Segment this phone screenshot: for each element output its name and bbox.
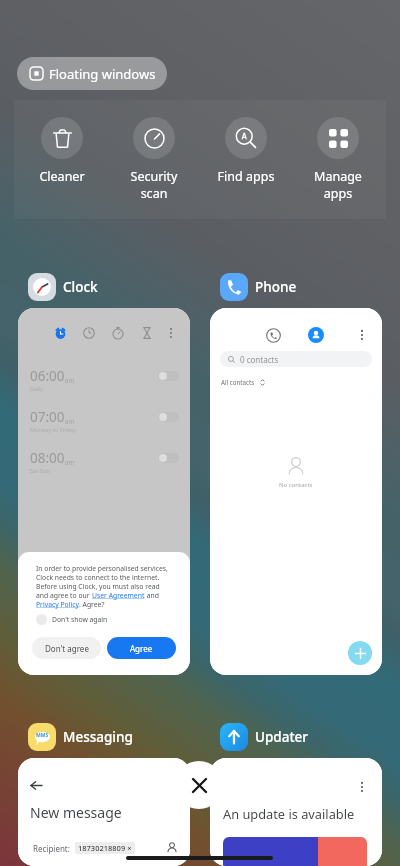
- button[interactable]: Cleaner: [18, 100, 106, 185]
- button[interactable]: Security scan: [110, 100, 198, 201]
- staticText: am: [65, 417, 75, 425]
- staticText: In order to provide personalised service…: [36, 564, 168, 573]
- staticText: am: [65, 376, 75, 384]
- staticText: 18730218809 ×: [78, 843, 132, 853]
- staticText: An update is available: [223, 805, 355, 822]
- button[interactable]: Clock: [18, 273, 98, 301]
- button[interactable]: Tab: [305, 324, 327, 346]
- button[interactable]: Manage apps: [294, 100, 382, 201]
- staticText: Privacy Policy: [36, 600, 79, 609]
- staticText: Don't show again: [52, 615, 108, 624]
- button[interactable]: More options: [210, 758, 382, 866]
- button[interactable]: Updater: [210, 723, 309, 751]
- button[interactable]: Don't show again: [36, 614, 108, 625]
- staticText: No contacts: [279, 481, 313, 489]
- staticText: Daily: [30, 385, 43, 393]
- staticText: Updater: [255, 728, 309, 746]
- staticText: New message: [30, 803, 122, 822]
- button[interactable]: Find apps: [202, 100, 290, 185]
- button[interactable]: Tab: [107, 322, 129, 344]
- button[interactable]: Toggle alarm: [158, 453, 179, 463]
- staticText: Messaging: [63, 728, 133, 746]
- staticText: Phone: [255, 278, 297, 296]
- button[interactable]: MMS: [18, 723, 133, 751]
- staticText: User Agreement: [92, 591, 145, 600]
- button[interactable]: More options: [352, 777, 372, 797]
- button[interactable]: All contacts: [221, 378, 266, 386]
- button[interactable]: Phone: [210, 273, 297, 301]
- staticText: Manage apps: [294, 168, 382, 201]
- button[interactable]: Tab: [160, 322, 182, 344]
- staticText: MMS: [36, 732, 49, 739]
- button[interactable]: Add contact: [348, 641, 372, 665]
- staticText: Before using Clock, you must also read: [36, 582, 160, 591]
- button[interactable]: Don't agree: [32, 637, 101, 659]
- staticText: Clock: [63, 278, 98, 296]
- staticText: Sat Sun: [30, 467, 50, 475]
- button[interactable]: Back: [26, 775, 47, 796]
- staticText: 07:00: [30, 408, 65, 426]
- button[interactable]: Tab: [136, 322, 158, 344]
- staticText: and: [145, 591, 159, 600]
- staticText: Security scan: [110, 168, 198, 201]
- button[interactable]: 0 contacts: [220, 351, 372, 367]
- button[interactable]: Tab: [262, 324, 284, 346]
- staticText: 0 contacts: [240, 354, 279, 365]
- staticText: All contacts: [221, 378, 255, 386]
- staticText: Agree: [130, 643, 153, 654]
- button[interactable]: Tab: [210, 308, 382, 675]
- button[interactable]: Toggle alarm: [158, 371, 179, 381]
- staticText: Recipient:: [33, 843, 70, 854]
- staticText: Find apps: [202, 168, 290, 185]
- staticText: Clock needs to connect to the internet.: [36, 573, 160, 582]
- button[interactable]: Agree: [107, 637, 176, 659]
- button[interactable]: Tab: [18, 308, 190, 675]
- staticText: 08:00: [30, 449, 65, 467]
- staticText: Cleaner: [18, 168, 106, 185]
- button[interactable]: Tab: [78, 322, 100, 344]
- staticText: and agree to our: [36, 591, 92, 600]
- button[interactable]: Tab: [351, 324, 373, 346]
- staticText: Floating windows: [49, 65, 156, 83]
- button[interactable]: Back: [18, 758, 190, 866]
- staticText: Monday to Friday: [30, 426, 76, 434]
- staticText: am: [65, 458, 75, 466]
- staticText: . Agree?: [79, 600, 105, 609]
- button[interactable]: Close all: [175, 761, 223, 809]
- button[interactable]: Floating windows: [17, 57, 167, 90]
- staticText: Don't agree: [45, 643, 89, 654]
- staticText: 06:00: [30, 367, 65, 385]
- button[interactable]: Tab: [49, 322, 71, 344]
- button[interactable]: Toggle alarm: [158, 412, 179, 422]
